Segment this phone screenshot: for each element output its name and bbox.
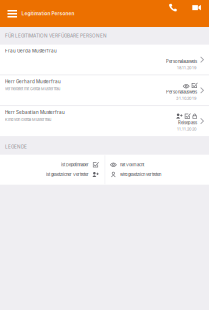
staticText: hat Vollmacht (120, 162, 144, 167)
staticText: Herr Gerhard Musterfrau (5, 79, 61, 84)
button[interactable]: Menu (0, 0, 22, 27)
button[interactable]: Video call (185, 0, 209, 27)
staticText: Kind von Gerda Musterfrau (5, 117, 51, 122)
staticText: 31.10.2019 (176, 96, 197, 101)
button[interactable]: Herr Gerhard Musterfrau (0, 75, 209, 105)
staticText: ist gesetzlicher Vertreter (46, 172, 89, 177)
staticText: 18.11.2019 (177, 65, 197, 70)
button[interactable]: Herr Sebastian Musterfrau (0, 106, 209, 136)
staticText: Legitimation Personen (21, 11, 74, 16)
staticText: Personalausweis (166, 59, 197, 64)
staticText: ist Depotinhaber (61, 162, 89, 167)
staticText: Frau Gerda Musterfrau (5, 48, 57, 54)
staticText: Personalausweis (166, 89, 197, 95)
staticText: 11.11.2020 (177, 127, 197, 131)
staticText: Herr Sebastian Musterfrau (5, 109, 65, 115)
button[interactable]: Frau Gerda Musterfrau (0, 45, 209, 75)
staticText: verheiratet mit Gerda Musterfrau (5, 86, 60, 91)
staticText: LEGENDE (5, 144, 27, 150)
staticText: FÜR LEGITIMATION VERFÜGBARE PERSONEN (5, 33, 107, 39)
staticText: Reisepass (178, 120, 197, 125)
button[interactable]: Call (161, 0, 185, 27)
staticText: wird gesetzlich vertreten (120, 172, 161, 177)
